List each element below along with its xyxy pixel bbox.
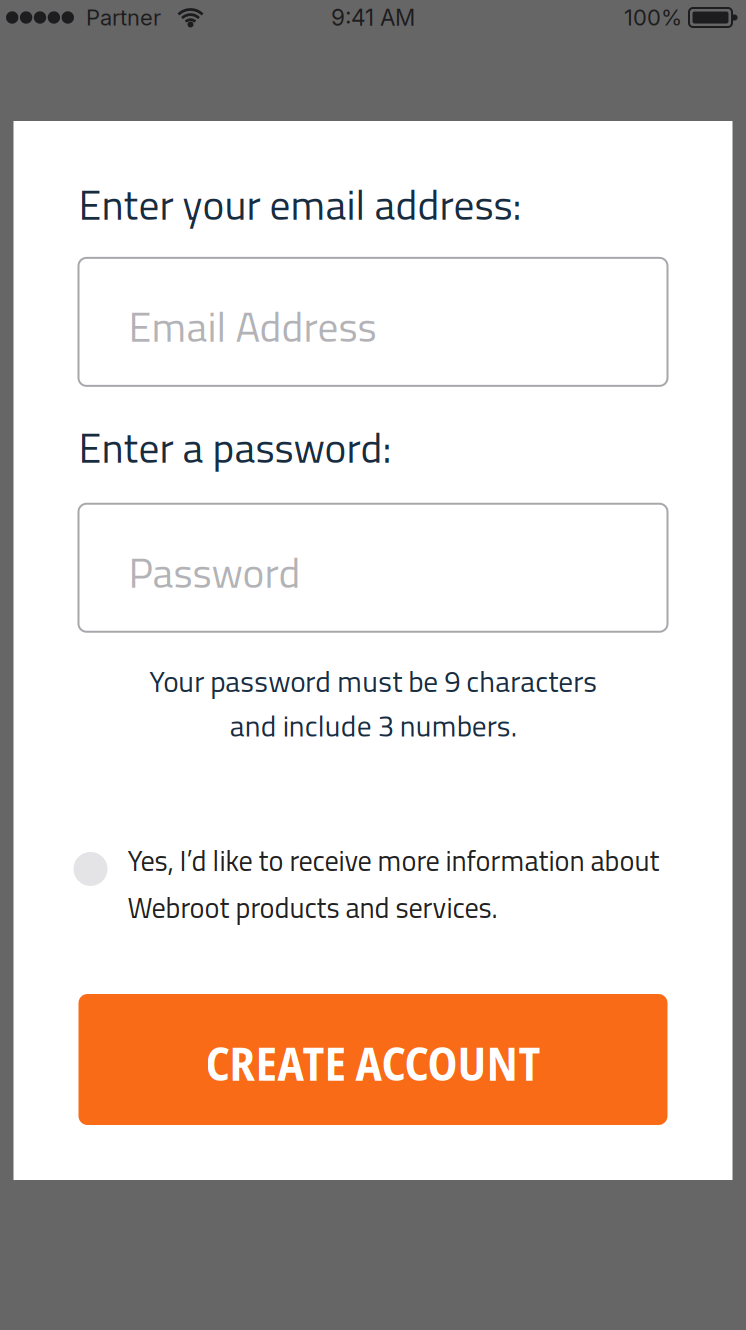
staticText: Enter your email address: bbox=[78, 173, 521, 236]
staticText: CREATE ACCOUNT bbox=[205, 1032, 540, 1094]
button[interactable]: Password bbox=[78, 504, 667, 632]
button[interactable]: Yes, I’d like to receive more informatio… bbox=[13, 839, 659, 929]
button[interactable]: CREATE ACCOUNT bbox=[13, 994, 732, 1125]
staticText: Enter a password: bbox=[78, 416, 391, 479]
staticText: 9:41 AM bbox=[331, 4, 415, 31]
staticText: Email Address bbox=[128, 295, 376, 358]
staticText: 100% bbox=[624, 4, 682, 31]
staticText: Yes, I’d like to receive more informatio… bbox=[127, 839, 659, 929]
button[interactable]: Email Address bbox=[78, 258, 667, 386]
staticText: Password bbox=[128, 541, 300, 604]
staticText: Partner bbox=[86, 4, 161, 31]
staticText: Your password must be 9 characters and i… bbox=[149, 659, 597, 748]
